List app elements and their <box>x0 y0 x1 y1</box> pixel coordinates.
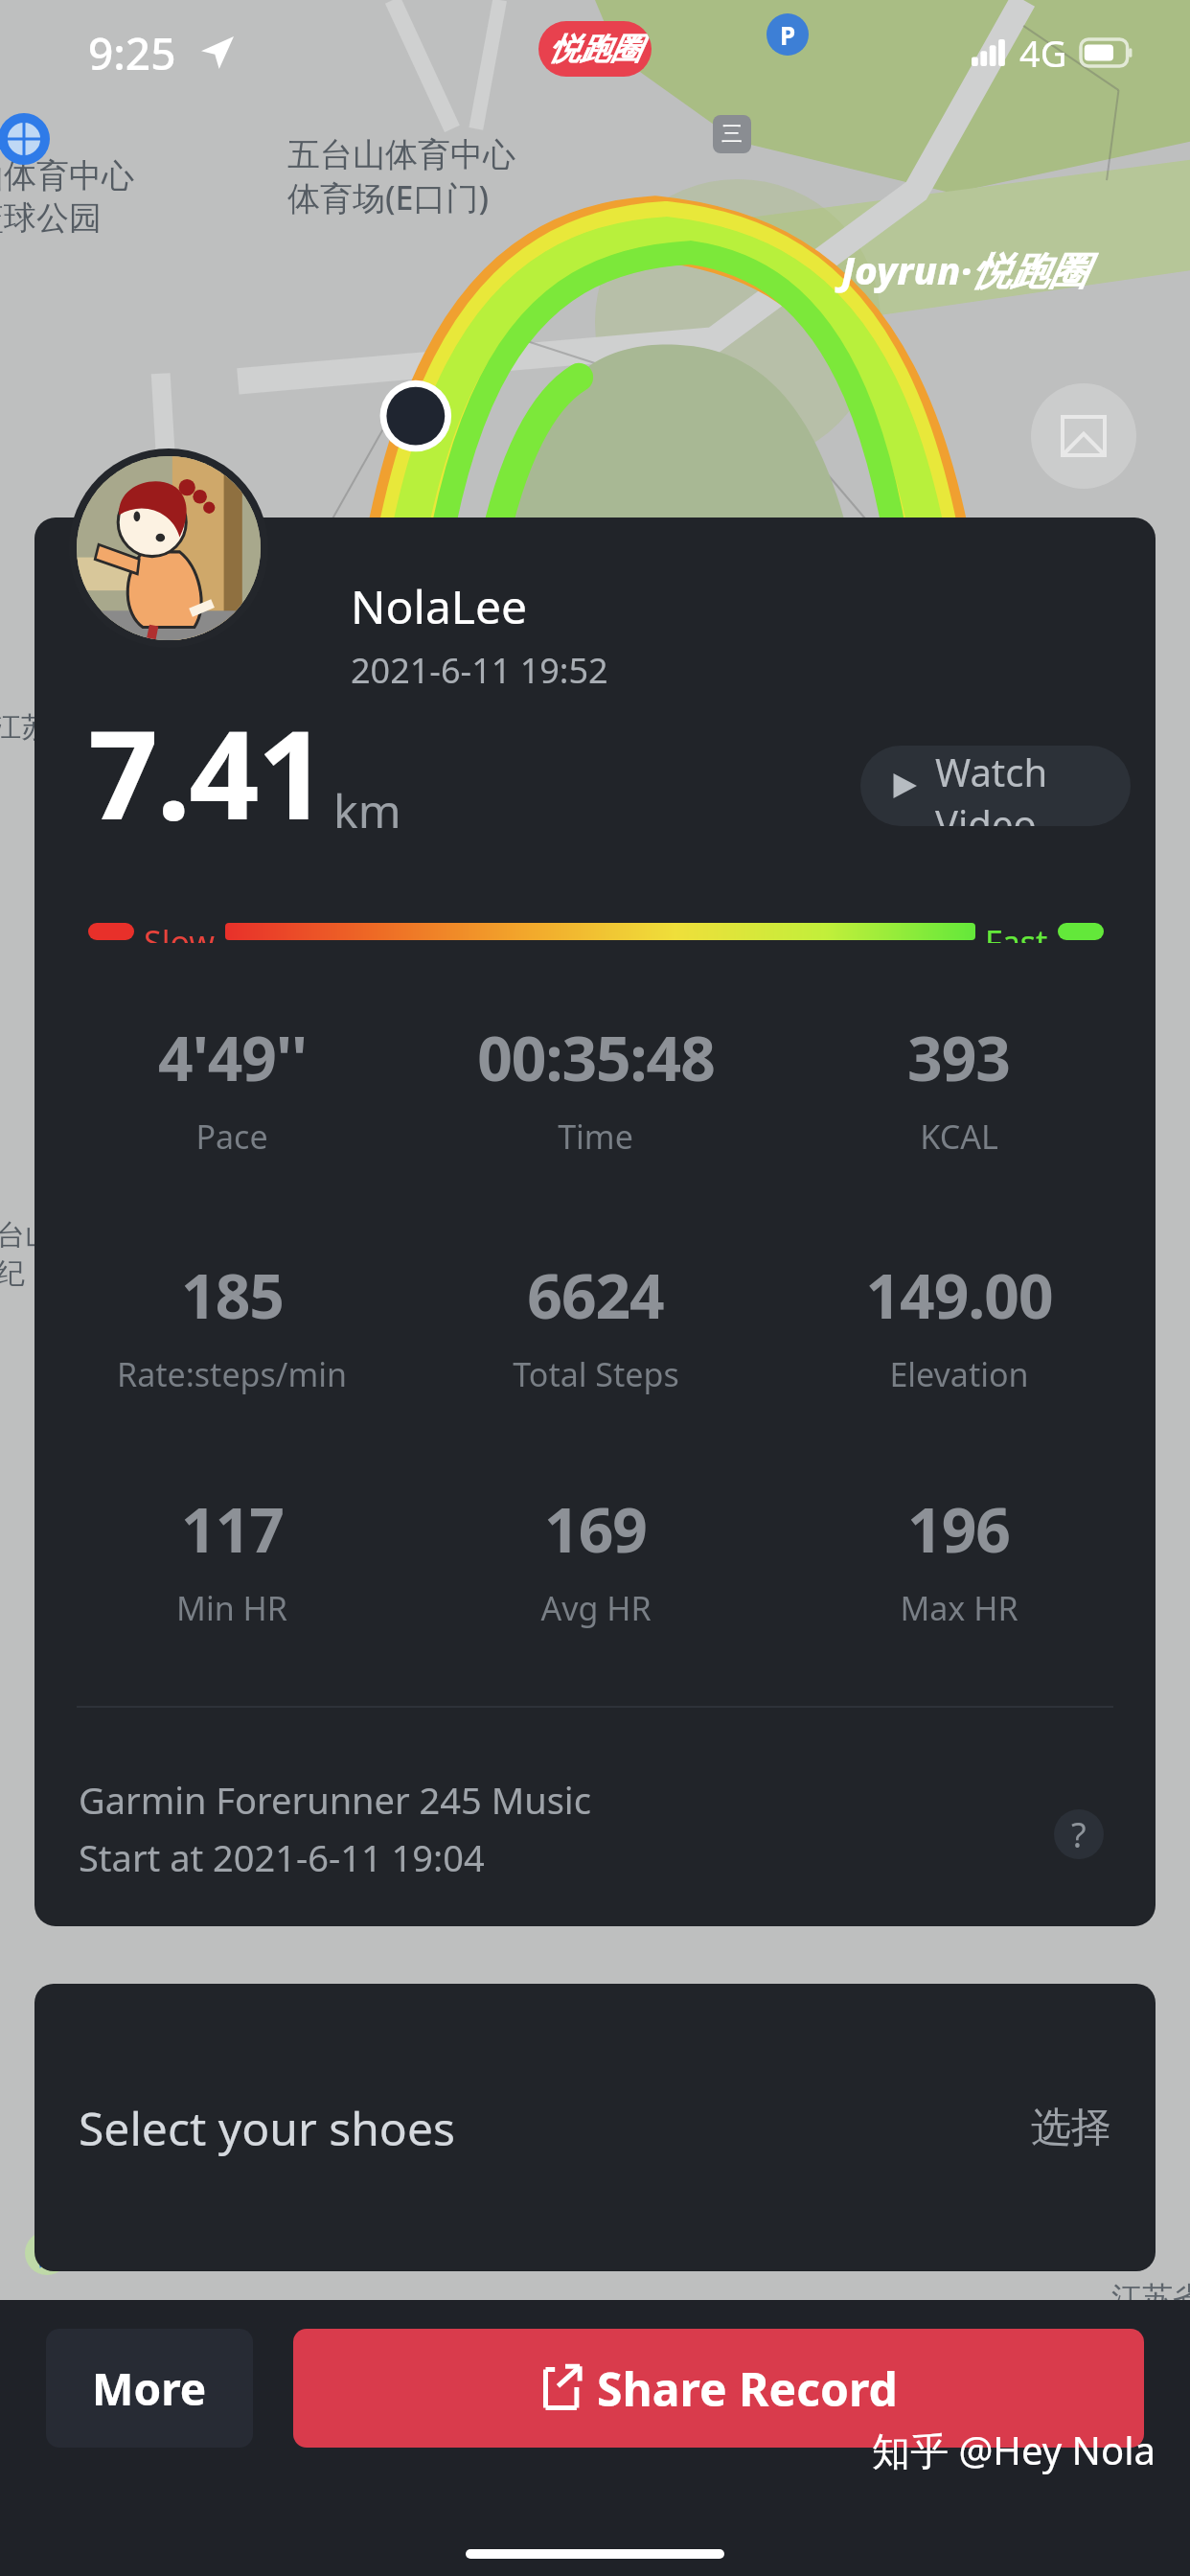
staticText: Joyrun·悦跑圈 <box>841 243 1087 296</box>
staticText: Fast <box>985 920 1048 943</box>
staticText: 选择 <box>1031 2103 1111 2153</box>
staticText: KCAL <box>920 1115 998 1159</box>
staticText: 4'49'' <box>158 1016 307 1099</box>
staticText: Start at 2021-6-11 19:04 <box>79 1832 485 1882</box>
staticText: 4G <box>1019 28 1067 78</box>
staticText: 南京市不动 <box>805 2237 958 2275</box>
staticText: ? <box>1071 1811 1087 1858</box>
staticText: 185 <box>181 1253 284 1337</box>
staticText: Garmin Forerunner 245 Music <box>79 1775 591 1825</box>
staticText: 悦跑圈 <box>549 30 641 68</box>
button[interactable]: Map layers <box>1031 383 1136 489</box>
staticText: Select your shoes <box>79 2097 1031 2159</box>
staticText: Rate:steps/min <box>117 1352 347 1396</box>
staticText: Total Steps <box>513 1352 679 1396</box>
staticText: Time <box>558 1115 633 1159</box>
staticText: 江苏 <box>0 709 50 746</box>
staticText: Elevation <box>889 1352 1029 1396</box>
staticText: Share Record <box>597 2357 898 2420</box>
staticText: Slow <box>144 920 216 943</box>
staticText: 393 <box>907 1016 1010 1099</box>
staticText: More <box>92 2358 207 2419</box>
button[interactable]: Share Record <box>293 2329 1144 2448</box>
button[interactable]: Select your shoes <box>34 1984 1156 2271</box>
staticText: 五台山体育中心 体育场(E口门) <box>287 134 516 219</box>
staticText: NolaLee <box>351 575 528 637</box>
staticText: 山体育中心 篮球公园 <box>0 155 134 239</box>
button[interactable]: Help <box>1054 1809 1104 1859</box>
button[interactable]: More <box>46 2329 253 2448</box>
staticText: Pace <box>195 1115 268 1159</box>
staticText: 9:25 <box>88 23 176 83</box>
staticText: P <box>780 18 796 52</box>
staticText: 00:35:48 <box>477 1016 715 1099</box>
staticText: Min HR <box>176 1586 287 1630</box>
staticText: Watch Video <box>935 746 1131 826</box>
staticText: 2021-6-11 19:52 <box>351 647 608 694</box>
staticText: Avg HR <box>540 1586 652 1630</box>
staticText: Max HR <box>900 1586 1018 1630</box>
staticText: 台山 纪 <box>0 1217 54 1292</box>
staticText: 三 <box>721 121 743 148</box>
staticText: 6624 <box>527 1253 664 1337</box>
staticText: 7.41 <box>88 688 326 855</box>
staticText: 江苏省 <box>1111 2279 1190 2317</box>
staticText: 117 <box>181 1487 284 1571</box>
button[interactable]: Watch Video <box>860 746 1131 826</box>
staticText: 196 <box>907 1487 1010 1571</box>
staticText: km <box>333 779 401 841</box>
staticText: 169 <box>544 1487 647 1571</box>
staticText: 149.00 <box>865 1253 1053 1337</box>
staticText: 知乎 @Hey Nola <box>872 2424 1156 2476</box>
